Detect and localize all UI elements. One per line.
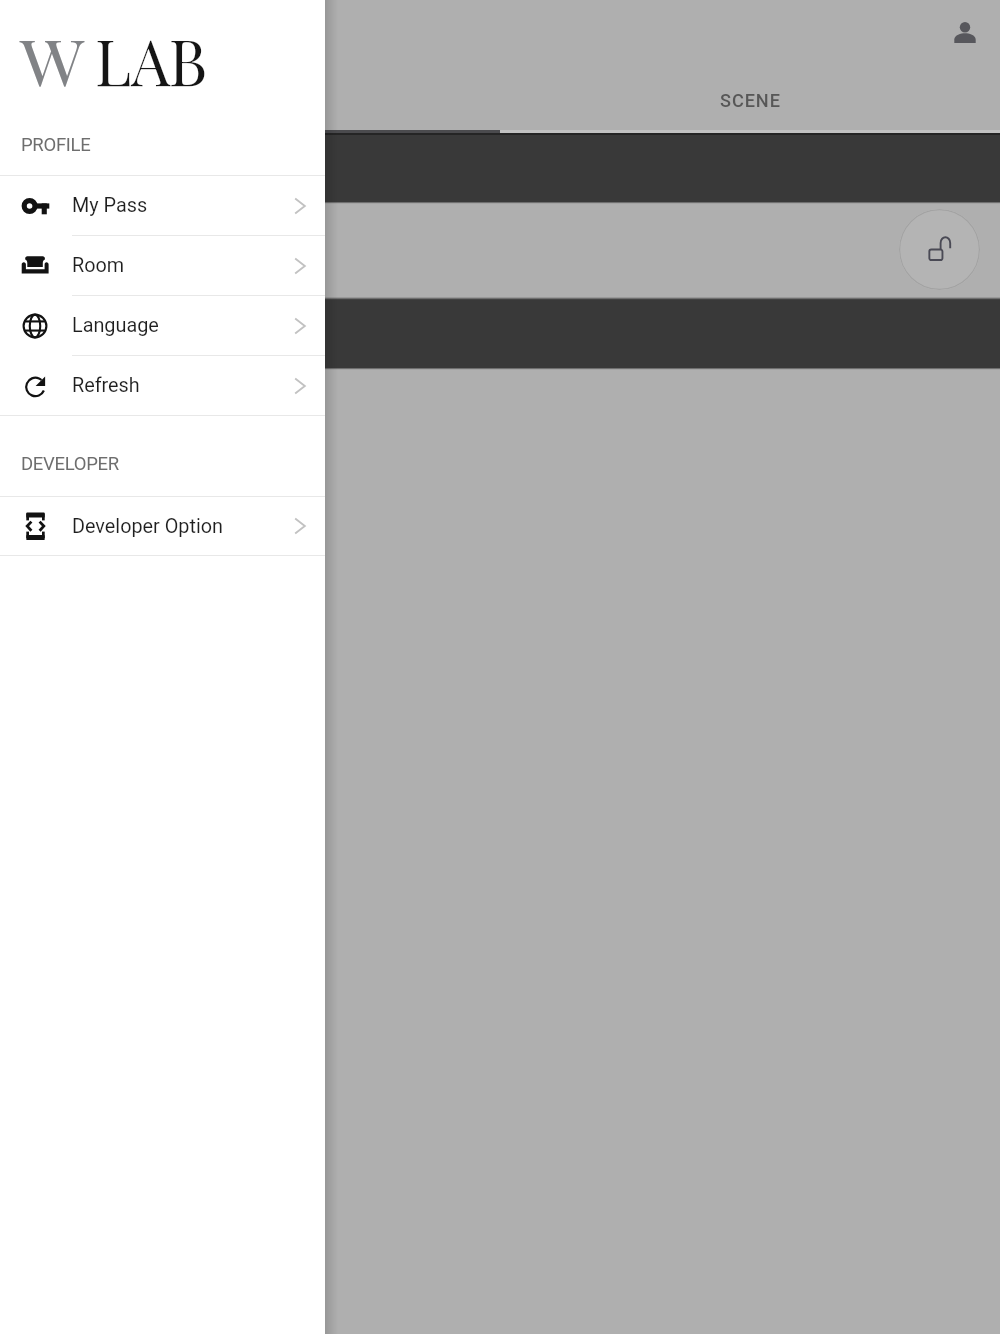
staticText: Refresh bbox=[72, 374, 140, 397]
staticText: Developer Option bbox=[72, 515, 223, 538]
button[interactable]: SCENE bbox=[500, 71, 1000, 130]
button[interactable]: Language bbox=[0, 296, 325, 355]
button[interactable]: Unlock bbox=[899, 209, 980, 290]
staticText: W bbox=[20, 17, 84, 102]
staticText: Room bbox=[72, 254, 125, 277]
button[interactable]: Developer Option bbox=[0, 497, 325, 555]
button[interactable]: My Pass bbox=[0, 176, 325, 235]
button[interactable]: Room bbox=[0, 236, 325, 295]
staticText: DEVELOPER bbox=[21, 453, 119, 475]
button[interactable]: Refresh bbox=[0, 356, 325, 415]
button[interactable]: Account bbox=[940, 5, 989, 54]
staticText: My Pass bbox=[72, 194, 148, 217]
staticText: SCENE bbox=[720, 90, 781, 111]
staticText: LAB bbox=[95, 17, 208, 102]
staticText: PROFILE bbox=[21, 134, 91, 156]
staticText: Language bbox=[72, 314, 159, 337]
